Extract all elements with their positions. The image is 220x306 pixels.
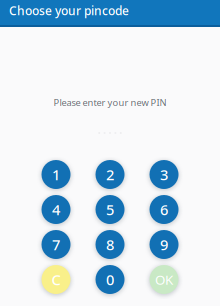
button[interactable]: 5 xyxy=(95,195,124,224)
button[interactable]: 3 xyxy=(149,160,178,189)
staticText: Please enter your new PIN xyxy=(53,96,166,109)
button[interactable]: OK xyxy=(149,265,178,294)
staticText: 4 xyxy=(52,200,60,219)
staticText: C xyxy=(51,270,60,289)
button[interactable]: 6 xyxy=(149,195,178,224)
staticText: 7 xyxy=(52,235,60,254)
button[interactable]: 0 xyxy=(95,265,124,294)
staticText: 2 xyxy=(106,165,114,184)
staticText: Choose your pincode xyxy=(9,2,129,18)
staticText: 5 xyxy=(106,200,114,219)
staticText: 8 xyxy=(106,235,114,254)
button[interactable]: Clear xyxy=(41,265,70,294)
staticText: OK xyxy=(155,271,173,288)
button[interactable]: 8 xyxy=(95,230,124,259)
button[interactable]: 2 xyxy=(95,160,124,189)
staticText: 1 xyxy=(52,165,60,184)
button[interactable]: 1 xyxy=(41,160,70,189)
staticText: 6 xyxy=(160,200,168,219)
staticText: 9 xyxy=(160,235,168,254)
button[interactable]: 9 xyxy=(149,230,178,259)
staticText: 0 xyxy=(106,270,114,289)
button[interactable]: 7 xyxy=(41,230,70,259)
staticText: 3 xyxy=(160,165,168,184)
button[interactable]: 4 xyxy=(41,195,70,224)
